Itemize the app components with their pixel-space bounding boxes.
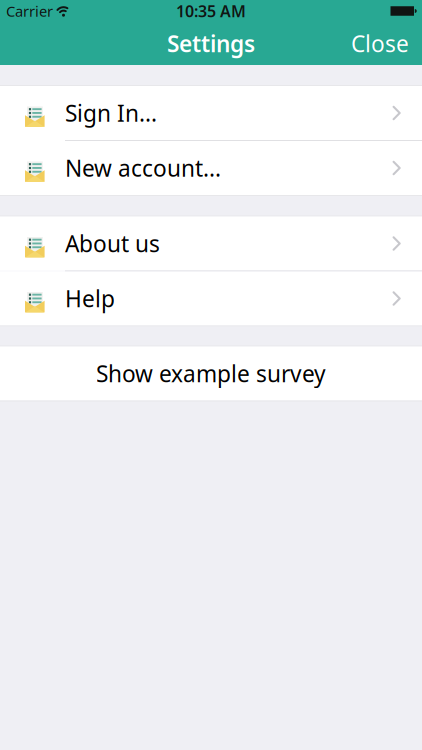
button[interactable]: About us <box>0 216 422 270</box>
button[interactable]: Close <box>351 28 422 58</box>
staticText: 10:35 AM <box>176 0 246 22</box>
staticText: Show example survey <box>96 358 326 388</box>
button[interactable]: Sign In... <box>0 86 422 140</box>
staticText: Carrier <box>6 1 53 21</box>
staticText: Help <box>65 283 115 313</box>
staticText: New account... <box>65 153 221 183</box>
button[interactable]: New account... <box>0 141 422 195</box>
staticText: Close <box>351 28 409 58</box>
staticText: Settings <box>167 28 255 58</box>
button[interactable]: Show example survey <box>0 346 422 400</box>
button[interactable]: Help <box>0 271 422 325</box>
staticText: About us <box>65 228 160 258</box>
staticText: Sign In... <box>65 98 157 128</box>
